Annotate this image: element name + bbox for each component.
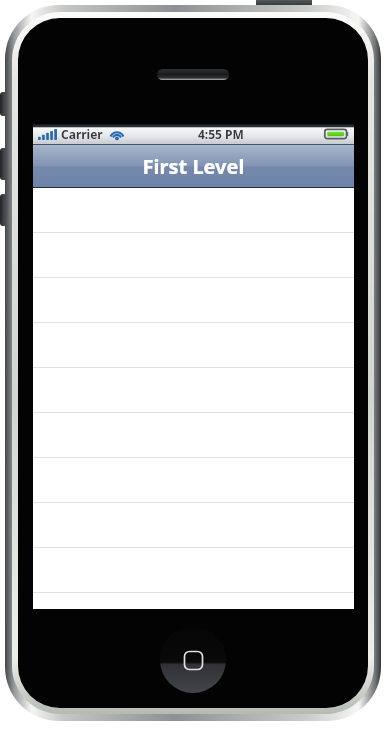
button[interactable]: Side button	[0, 148, 7, 180]
button[interactable]: Home	[160, 627, 226, 693]
staticText: First Level	[33, 153, 354, 180]
button[interactable]: Side button	[0, 194, 7, 226]
staticText: 4:55 PM	[198, 126, 244, 142]
button[interactable]: Side button	[0, 92, 7, 116]
staticText: Carrier	[61, 126, 103, 142]
button[interactable]: Power	[256, 0, 312, 9]
